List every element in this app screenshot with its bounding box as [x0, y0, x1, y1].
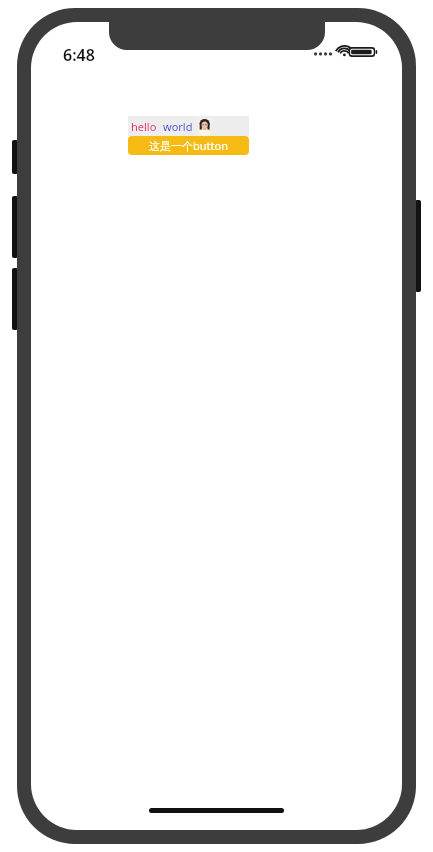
other: Power [415, 200, 421, 292]
other: Volume up [12, 196, 18, 258]
staticText: 6:48 [63, 44, 95, 66]
staticText: 这是一个button [149, 138, 228, 153]
button[interactable]: 这是一个button [128, 136, 249, 155]
staticText: world [163, 119, 193, 134]
other: Silent switch [12, 140, 18, 174]
staticText: hello [131, 119, 157, 134]
other: Volume down [12, 268, 18, 330]
